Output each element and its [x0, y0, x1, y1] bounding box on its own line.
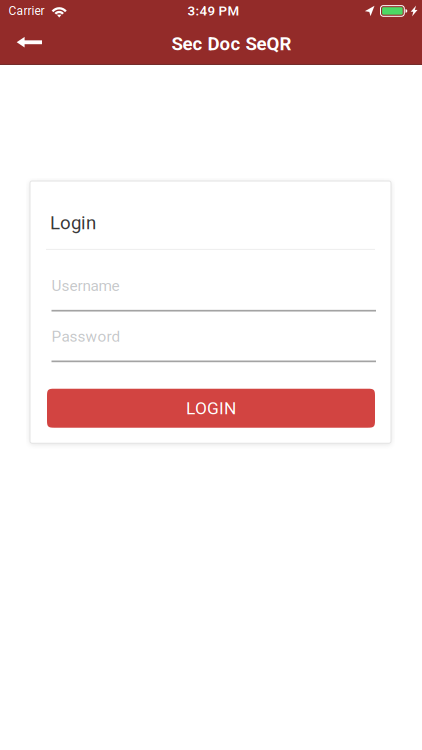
staticText: 3:49 PM — [187, 3, 239, 19]
staticText: Login — [50, 212, 96, 234]
staticText: LOGIN — [186, 398, 236, 418]
staticText: Sec Doc SeQR — [171, 33, 291, 55]
button[interactable]: Password — [30, 327, 391, 362]
button[interactable]: LOGIN — [47, 389, 375, 428]
staticText: Password — [51, 327, 120, 345]
staticText: Carrier — [8, 4, 44, 18]
button[interactable]: Username — [30, 277, 391, 312]
button[interactable]: Back — [0, 22, 56, 64]
staticText: Username — [51, 277, 119, 295]
